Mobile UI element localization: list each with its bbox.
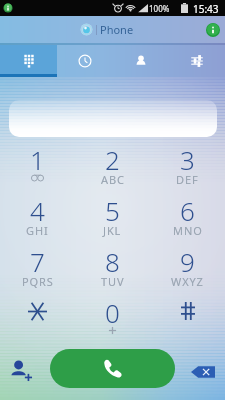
button[interactable] [150, 291, 225, 341]
button[interactable]: 9 [150, 240, 225, 290]
staticText: 6 [180, 193, 195, 223]
button[interactable]: 5 [75, 189, 150, 239]
button[interactable]: Contacts [113, 45, 169, 77]
staticText: 100% [149, 3, 170, 14]
staticText: PQRS [22, 274, 54, 289]
button[interactable]: 1 [0, 138, 75, 188]
button[interactable]: 0 [75, 291, 150, 341]
staticText: 8 [105, 244, 120, 274]
staticText: DEF [176, 172, 199, 187]
button[interactable]: 2 [75, 138, 150, 188]
staticText: 9 [180, 244, 195, 274]
staticText: 5 [105, 193, 120, 223]
staticText: Phone [100, 22, 134, 37]
button[interactable]: 7 [0, 240, 75, 290]
staticText: 1 [30, 142, 45, 172]
button[interactable]: Add to contacts [4, 353, 38, 387]
staticText: WXYZ [171, 274, 204, 289]
staticText: 0 [105, 295, 120, 325]
button[interactable]: Call [50, 349, 175, 388]
staticText: 4 [30, 193, 45, 223]
staticText: 7 [30, 244, 45, 274]
button[interactable]: 6 [150, 189, 225, 239]
staticText: ABC [101, 172, 125, 187]
staticText: GHI [26, 223, 49, 238]
button[interactable]: 8 [75, 240, 150, 290]
button[interactable]: Keypad [0, 45, 57, 77]
staticText: 15:43 [193, 2, 219, 16]
staticText: JKL [103, 223, 122, 238]
staticText: 2 [105, 142, 120, 172]
staticText: 3 [180, 142, 195, 172]
staticText: MNO [173, 223, 203, 238]
button[interactable]: Logs [57, 45, 113, 77]
button[interactable] [9, 100, 217, 137]
button[interactable]: Backspace [186, 356, 220, 388]
button[interactable]: Info [206, 23, 220, 37]
button[interactable]: Favorites [169, 45, 225, 77]
button[interactable]: 4 [0, 189, 75, 239]
button[interactable] [0, 291, 75, 341]
staticText: TUV [101, 274, 125, 289]
button[interactable]: 3 [150, 138, 225, 188]
